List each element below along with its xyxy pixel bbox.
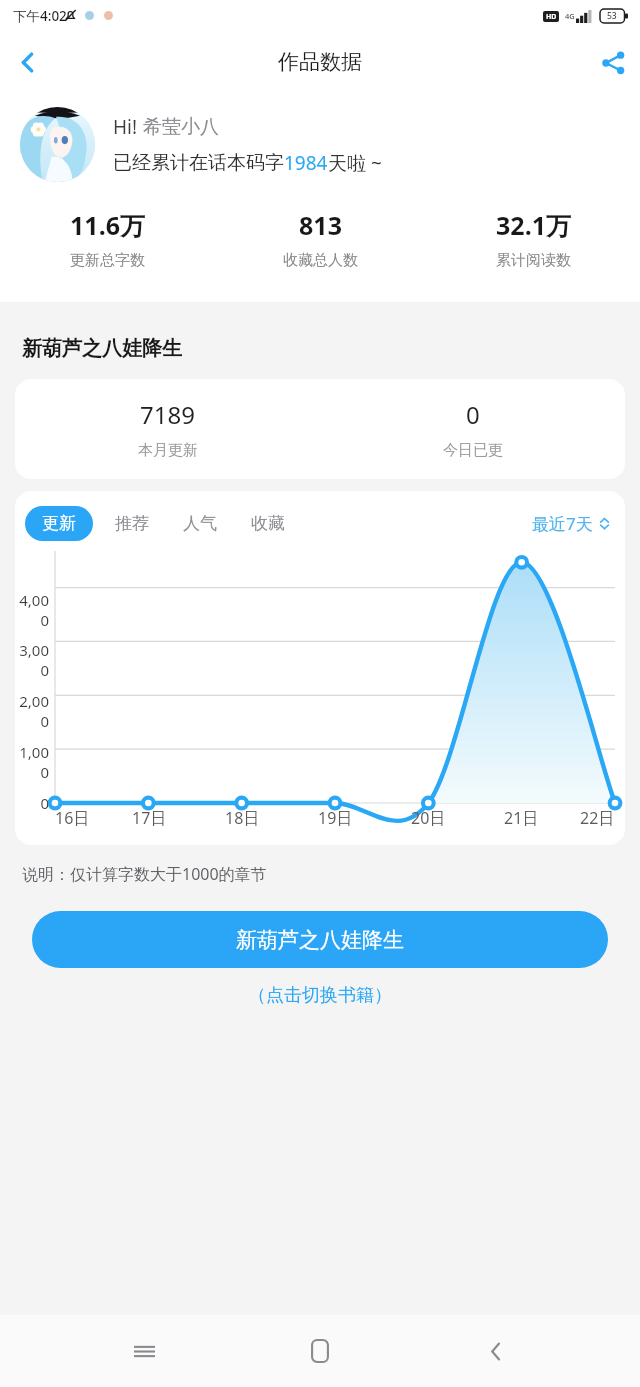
button[interactable]: 32.1万 bbox=[427, 208, 640, 270]
staticText: 收藏 bbox=[251, 513, 285, 534]
staticText: 1984 bbox=[284, 150, 328, 176]
staticText: 天啦 ~ bbox=[328, 150, 382, 176]
staticText: 今日已更 bbox=[443, 441, 503, 460]
staticText: 新葫芦之八娃降生 bbox=[22, 336, 182, 361]
staticText: 人气 bbox=[183, 513, 217, 534]
staticText: 32.1万 bbox=[496, 208, 571, 242]
staticText: 0 bbox=[15, 793, 49, 813]
staticText: 下午4:02 bbox=[13, 7, 67, 25]
staticText: 4,000 bbox=[15, 590, 49, 630]
staticText: 最近7天 bbox=[532, 512, 593, 535]
staticText: HD bbox=[546, 12, 557, 22]
staticText: 更新总字数 bbox=[70, 251, 145, 270]
staticText: 3,000 bbox=[15, 640, 49, 680]
staticText: 11.6万 bbox=[70, 208, 145, 242]
staticText: 4G bbox=[565, 11, 575, 21]
button[interactable]: 更新 bbox=[25, 506, 93, 541]
staticText: 推荐 bbox=[115, 513, 149, 534]
staticText: 7189 bbox=[140, 398, 195, 431]
staticText: Hi! bbox=[113, 114, 143, 140]
button[interactable]: 11.6万 bbox=[0, 208, 214, 270]
button[interactable]: 人气 bbox=[179, 506, 221, 541]
staticText: 已经累计在话本码字 bbox=[113, 151, 284, 175]
staticText: 收藏总人数 bbox=[283, 251, 358, 270]
staticText: 说明：仅计算字数大于1000的章节 bbox=[22, 863, 267, 885]
staticText: 本月更新 bbox=[138, 441, 198, 460]
button[interactable]: 推荐 bbox=[111, 506, 153, 541]
button[interactable]: Share bbox=[586, 35, 640, 89]
button[interactable]: Recents bbox=[112, 1319, 176, 1383]
staticText: 18日 bbox=[225, 807, 260, 829]
staticText: 17日 bbox=[132, 807, 167, 829]
button[interactable]: Back bbox=[464, 1319, 528, 1383]
staticText: 1,000 bbox=[15, 742, 49, 782]
staticText: 53 bbox=[607, 10, 617, 22]
staticText: 2,000 bbox=[15, 691, 49, 731]
staticText: 813 bbox=[299, 208, 342, 242]
button[interactable]: Back bbox=[0, 35, 54, 89]
staticText: 0 bbox=[466, 398, 480, 431]
button[interactable]: 收藏 bbox=[247, 506, 289, 541]
button[interactable]: 新葫芦之八娃降生 bbox=[32, 911, 608, 968]
button[interactable]: 0 bbox=[320, 398, 625, 460]
staticText: 希莹小八 bbox=[143, 115, 219, 139]
button[interactable]: （点击切换书籍） bbox=[244, 980, 396, 1011]
staticText: 22日 bbox=[580, 807, 615, 829]
staticText: 累计阅读数 bbox=[496, 251, 571, 270]
staticText: 更新 bbox=[42, 513, 76, 534]
staticText: 16日 bbox=[55, 807, 90, 829]
staticText: 作品数据 bbox=[278, 49, 362, 75]
staticText: 新葫芦之八娃降生 bbox=[236, 927, 404, 953]
button[interactable]: Home bbox=[288, 1319, 352, 1383]
staticText: 20日 bbox=[411, 807, 446, 829]
staticText: 21日 bbox=[504, 807, 539, 829]
button[interactable]: Hi! bbox=[20, 107, 622, 182]
button[interactable]: 813 bbox=[214, 208, 427, 270]
staticText: 19日 bbox=[318, 807, 353, 829]
button[interactable]: 7189 bbox=[15, 398, 320, 460]
button[interactable]: 最近7天 bbox=[532, 506, 611, 541]
